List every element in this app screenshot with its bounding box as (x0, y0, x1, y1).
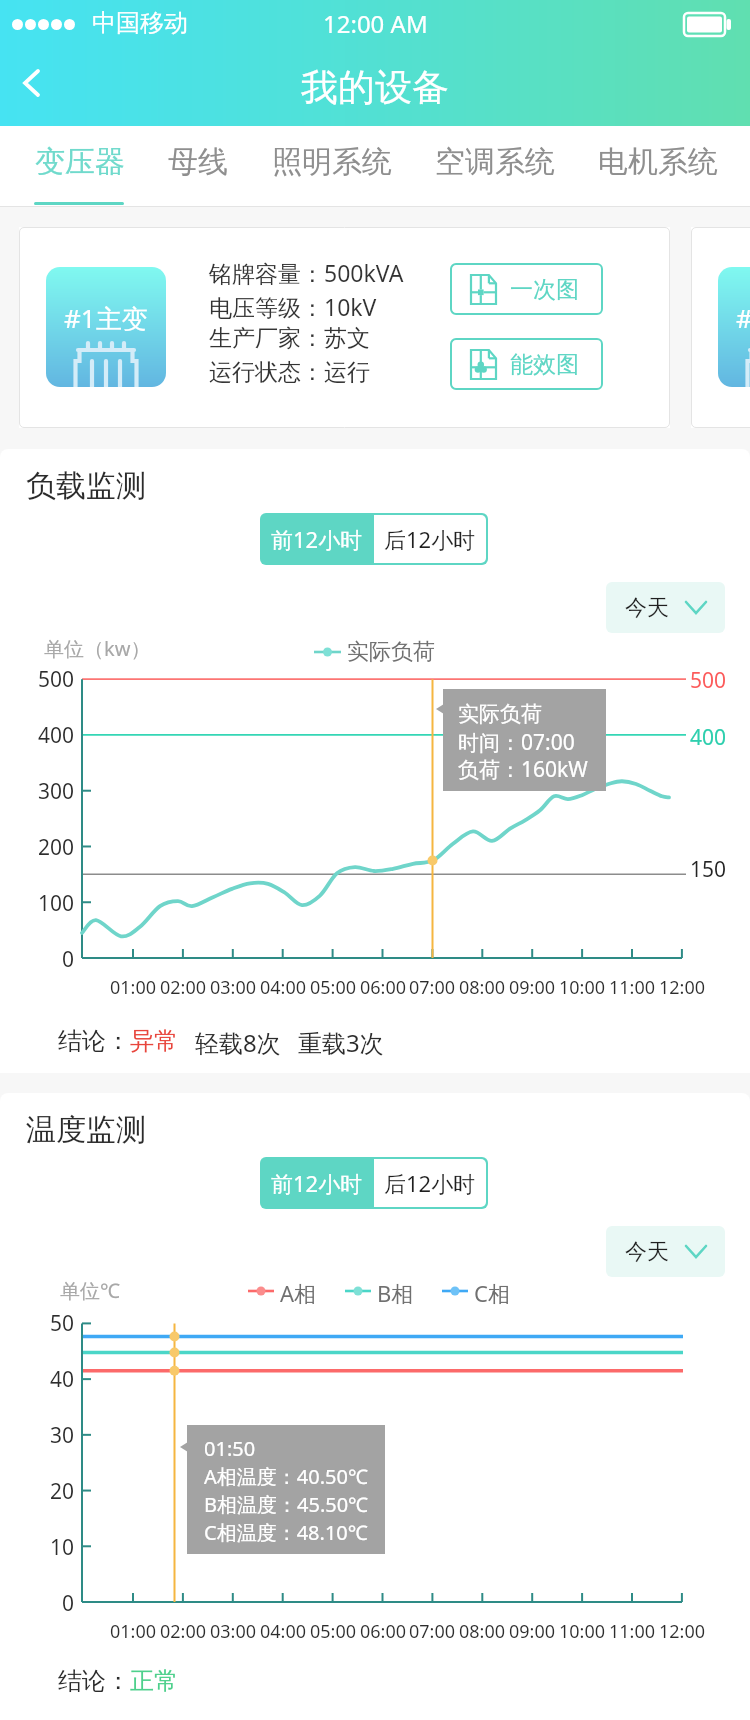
staticText: #1主变 (64, 300, 148, 336)
staticText: 12:00 (657, 1619, 707, 1644)
button[interactable]: #1主变 (691, 227, 750, 428)
staticText: A相温度：40.50℃ (204, 1463, 368, 1490)
button[interactable]: 电机系统 (598, 126, 718, 207)
staticText: 母线 (168, 143, 228, 181)
staticText: 结论： (58, 1026, 130, 1056)
staticText: 12:00 AM (323, 7, 428, 40)
staticText: 03:00 (208, 975, 258, 1000)
button[interactable]: 能效图 (450, 338, 603, 390)
staticText: 变压器 (35, 143, 125, 181)
staticText: 05:00 (308, 1619, 358, 1644)
staticText: 重载3次 (298, 1026, 384, 1059)
staticText: 能效图 (510, 350, 579, 379)
button[interactable]: 照明系统 (272, 126, 392, 207)
staticText: C相温度：48.10℃ (204, 1519, 368, 1546)
staticText: 后12小时 (384, 524, 476, 554)
staticText: 01:00 (108, 975, 158, 1000)
staticText: 电机系统 (598, 143, 718, 181)
staticText: 02:00 (158, 975, 208, 1000)
staticText: 正常 (130, 1666, 178, 1696)
staticText: 结论： (58, 1666, 130, 1696)
staticText: 04:00 (258, 975, 308, 1000)
staticText: 中国移动 (92, 8, 188, 38)
staticText: A相 (280, 1278, 317, 1308)
staticText: 照明系统 (272, 143, 392, 181)
staticText: 我的设备 (301, 64, 449, 111)
staticText: 06:00 (358, 975, 408, 1000)
staticText: 09:00 (507, 975, 557, 1000)
staticText: 铭牌容量：500kVA (209, 257, 404, 288)
button[interactable]: 今天 (606, 1226, 725, 1277)
staticText: 500 (18, 665, 74, 694)
button[interactable]: 前12小时 (260, 513, 374, 565)
staticText: 400 (690, 723, 727, 752)
staticText: 400 (18, 721, 74, 750)
staticText: 06:00 (358, 1619, 408, 1644)
button[interactable]: 后12小时 (374, 1159, 486, 1207)
staticText: 后12小时 (384, 1168, 476, 1198)
staticText: #1主变 (736, 300, 750, 336)
staticText: 20 (18, 1477, 74, 1506)
staticText: 负荷：160kW (458, 755, 588, 784)
staticText: C相 (474, 1278, 510, 1308)
staticText: 实际负荷 (347, 638, 435, 666)
staticText: 40 (18, 1365, 74, 1394)
staticText: 单位℃ (60, 1277, 120, 1304)
button[interactable]: 母线 (168, 126, 228, 207)
staticText: 08:00 (457, 975, 507, 1000)
staticText: 10:00 (557, 975, 607, 1000)
staticText: 单位（kw） (44, 635, 151, 662)
staticText: 200 (18, 833, 74, 862)
staticText: 温度监测 (26, 1111, 146, 1149)
staticText: 0 (18, 1589, 74, 1618)
staticText: 实际负荷 (458, 701, 542, 727)
staticText: 01:00 (108, 1619, 158, 1644)
staticText: 04:00 (258, 1619, 308, 1644)
staticText: 30 (18, 1421, 74, 1450)
button[interactable]: 后12小时 (374, 515, 486, 563)
button[interactable]: 空调系统 (435, 126, 555, 207)
staticText: 今天 (625, 594, 669, 622)
staticText: 异常 (130, 1026, 178, 1056)
staticText: 12:00 (657, 975, 707, 1000)
staticText: 100 (18, 889, 74, 918)
staticText: 负载监测 (26, 467, 146, 505)
staticText: 11:00 (607, 975, 657, 1000)
button[interactable]: 一次图 (450, 263, 603, 315)
staticText: 一次图 (510, 275, 579, 304)
staticText: 前12小时 (271, 524, 363, 554)
staticText: 500 (690, 666, 727, 695)
button[interactable]: 变压器 (35, 126, 125, 207)
staticText: 09:00 (507, 1619, 557, 1644)
staticText: 10:00 (557, 1619, 607, 1644)
staticText: B相 (377, 1278, 414, 1308)
button[interactable]: Back (0, 50, 64, 120)
staticText: 150 (690, 855, 727, 884)
staticText: 生产厂家：苏文 (209, 324, 370, 353)
staticText: 电压等级：10kV (209, 291, 377, 322)
button[interactable]: 今天 (606, 582, 725, 633)
staticText: 今天 (625, 1238, 669, 1266)
staticText: 07:00 (407, 1619, 457, 1644)
staticText: 05:00 (308, 975, 358, 1000)
staticText: 02:00 (158, 1619, 208, 1644)
staticText: 空调系统 (435, 143, 555, 181)
staticText: 50 (18, 1309, 74, 1338)
staticText: 08:00 (457, 1619, 507, 1644)
button[interactable]: #1主变 (19, 227, 670, 428)
staticText: 前12小时 (271, 1168, 363, 1198)
staticText: B相温度：45.50℃ (204, 1491, 369, 1518)
staticText: 11:00 (607, 1619, 657, 1644)
staticText: 0 (18, 945, 74, 974)
staticText: 07:00 (407, 975, 457, 1000)
button[interactable]: 前12小时 (260, 1157, 374, 1209)
staticText: 10 (18, 1533, 74, 1562)
staticText: 300 (18, 777, 74, 806)
staticText: 03:00 (208, 1619, 258, 1644)
staticText: 01:50 (204, 1435, 256, 1462)
staticText: 运行状态：运行 (209, 358, 370, 387)
staticText: 轻载8次 (195, 1026, 281, 1059)
staticText: 时间：07:00 (458, 728, 575, 757)
